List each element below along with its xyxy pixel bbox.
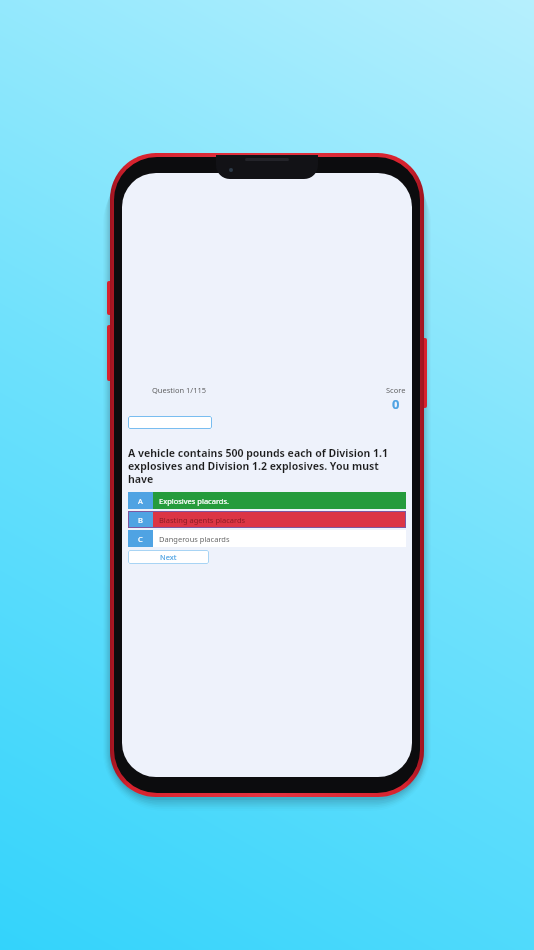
button[interactable] — [128, 416, 212, 429]
staticText: 0 — [392, 395, 400, 413]
staticText: Score — [386, 385, 406, 395]
button[interactable]: A — [128, 492, 406, 509]
button[interactable]: B — [128, 511, 406, 528]
button[interactable]: Next — [128, 550, 209, 564]
staticText: C — [138, 534, 143, 544]
staticText: Dangerous placards — [159, 534, 230, 544]
staticText: A — [138, 496, 143, 506]
staticText: Explosives placards. — [159, 496, 230, 506]
staticText: Question 1/115 — [152, 385, 207, 395]
staticText: Next — [160, 552, 177, 562]
staticText: Blasting agents placards — [159, 515, 246, 525]
staticText: B — [138, 515, 143, 525]
staticText: A vehicle contains 500 pounds each of Di… — [128, 446, 406, 486]
button[interactable]: C — [128, 530, 406, 547]
